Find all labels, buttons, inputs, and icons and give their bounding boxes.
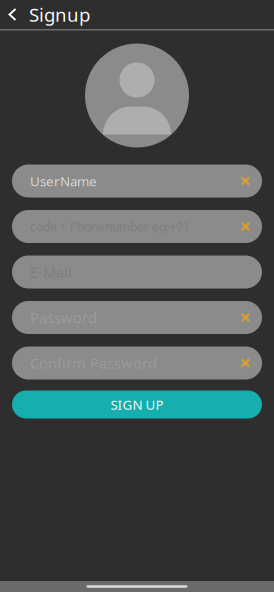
button[interactable]: code + Phonenumber eg:+91 <box>12 210 262 243</box>
staticText: Password <box>30 308 97 327</box>
staticText: Confirm Password <box>30 353 157 373</box>
button[interactable]: Back <box>0 0 29 29</box>
staticText: code + Phonenumber eg:+91 <box>30 218 190 234</box>
button[interactable]: Password <box>12 301 262 334</box>
staticText: UserName <box>30 172 97 190</box>
staticText: SIGN UP <box>110 396 163 413</box>
button[interactable]: E-Mail <box>12 255 262 288</box>
button[interactable]: SIGN UP <box>12 390 262 418</box>
staticText: E-Mail <box>30 262 72 282</box>
button[interactable]: Confirm Password <box>12 346 262 379</box>
staticText: Signup <box>29 2 90 27</box>
button[interactable]: UserName <box>12 164 262 197</box>
